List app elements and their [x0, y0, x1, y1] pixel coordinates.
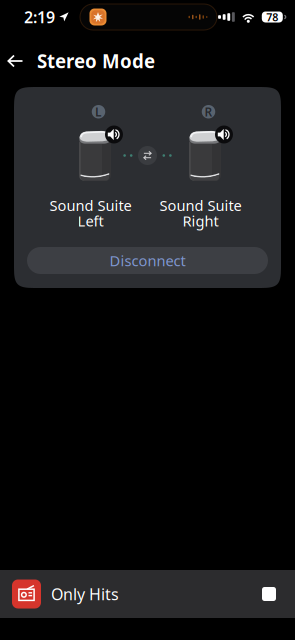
staticText: Sound Suite	[49, 195, 131, 215]
button[interactable]: Stop	[252, 577, 286, 611]
staticText: L	[95, 104, 102, 120]
staticText: Only Hits	[51, 583, 119, 605]
staticText: Stereo Mode	[37, 49, 155, 73]
staticText: Sound Suite	[159, 195, 241, 215]
staticText: R	[204, 104, 212, 120]
button[interactable]: Disconnect	[27, 247, 268, 274]
staticText: 78	[266, 10, 278, 24]
button[interactable]: Back	[0, 46, 31, 76]
staticText: Left	[77, 211, 103, 230]
staticText: Right	[182, 211, 218, 230]
staticText: Disconnect	[109, 251, 185, 270]
staticText: 2:19	[24, 6, 55, 28]
